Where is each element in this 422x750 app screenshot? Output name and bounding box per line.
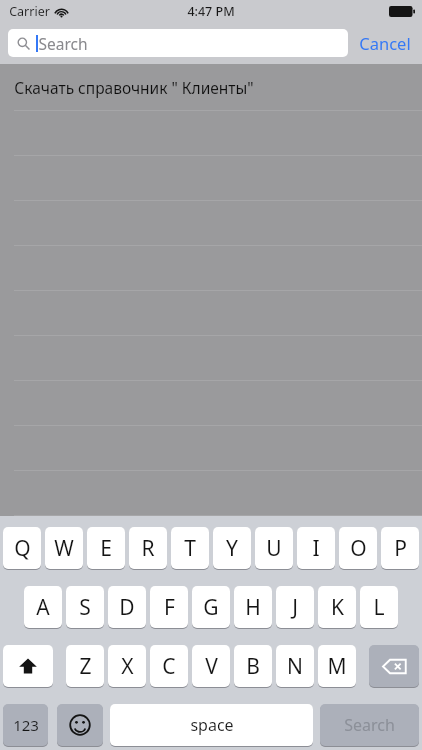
staticText: Скачать справочник " Клиенты" xyxy=(14,77,254,98)
button[interactable]: F xyxy=(150,586,188,628)
button[interactable]: W xyxy=(45,527,83,569)
staticText: A xyxy=(36,593,50,622)
button[interactable]: Search xyxy=(8,29,348,57)
button[interactable]: X xyxy=(108,645,146,687)
staticText: T xyxy=(184,534,196,563)
button[interactable]: Z xyxy=(66,645,104,687)
staticText: W xyxy=(54,534,74,563)
staticText: X xyxy=(121,652,134,681)
button[interactable]: C xyxy=(150,645,188,687)
staticText: 4:47 PM xyxy=(187,3,235,20)
staticText: Search xyxy=(344,714,395,736)
button[interactable]: S xyxy=(66,586,104,628)
staticText: G xyxy=(203,593,219,622)
button[interactable]: M xyxy=(318,645,356,687)
button[interactable]: I xyxy=(297,527,335,569)
staticText: E xyxy=(100,534,112,563)
button[interactable]: R xyxy=(129,527,167,569)
staticText: K xyxy=(331,593,344,622)
staticText: M xyxy=(327,652,347,681)
staticText: 123 xyxy=(13,715,39,735)
button[interactable]: Cancel xyxy=(348,26,422,60)
staticText: U xyxy=(266,534,282,563)
button[interactable]: D xyxy=(108,586,146,628)
staticText: I xyxy=(312,534,320,563)
staticText: N xyxy=(287,652,303,681)
button[interactable]: H xyxy=(234,586,272,628)
button[interactable]: N xyxy=(276,645,314,687)
staticText: B xyxy=(246,652,260,681)
staticText: space xyxy=(190,714,234,736)
staticText: Search xyxy=(38,33,88,54)
button[interactable]: A xyxy=(24,586,62,628)
staticText: V xyxy=(205,652,218,681)
staticText: S xyxy=(79,593,91,622)
staticText: L xyxy=(373,593,385,622)
staticText: C xyxy=(162,652,176,681)
button[interactable]: Скачать справочник " Клиенты" xyxy=(0,64,422,110)
staticText: P xyxy=(394,534,407,563)
button[interactable]: J xyxy=(276,586,314,628)
button[interactable]: Search xyxy=(320,704,419,746)
staticText: O xyxy=(350,534,367,563)
button[interactable]: O xyxy=(339,527,377,569)
staticText: D xyxy=(119,593,135,622)
button[interactable]: Shift xyxy=(3,645,53,687)
button[interactable]: P xyxy=(381,527,419,569)
staticText: F xyxy=(164,593,175,622)
button[interactable]: B xyxy=(234,645,272,687)
staticText: Z xyxy=(79,652,92,681)
button[interactable]: L xyxy=(360,586,398,628)
staticText: Cancel xyxy=(359,32,411,54)
button[interactable]: Backspace xyxy=(369,645,419,687)
staticText: Y xyxy=(226,534,238,563)
button[interactable]: T xyxy=(171,527,209,569)
button[interactable]: E xyxy=(87,527,125,569)
button[interactable]: 123 xyxy=(3,704,48,746)
button[interactable]: space xyxy=(110,704,313,746)
button[interactable]: V xyxy=(192,645,230,687)
staticText: J xyxy=(292,593,298,622)
button[interactable]: Emoji keyboard xyxy=(57,704,103,746)
staticText: R xyxy=(141,534,155,563)
button[interactable]: Q xyxy=(3,527,41,569)
staticText: Q xyxy=(14,534,31,563)
button[interactable]: G xyxy=(192,586,230,628)
button[interactable]: U xyxy=(255,527,293,569)
staticText: H xyxy=(245,593,261,622)
button[interactable]: K xyxy=(318,586,356,628)
button[interactable]: Y xyxy=(213,527,251,569)
staticText: Carrier xyxy=(9,3,50,20)
